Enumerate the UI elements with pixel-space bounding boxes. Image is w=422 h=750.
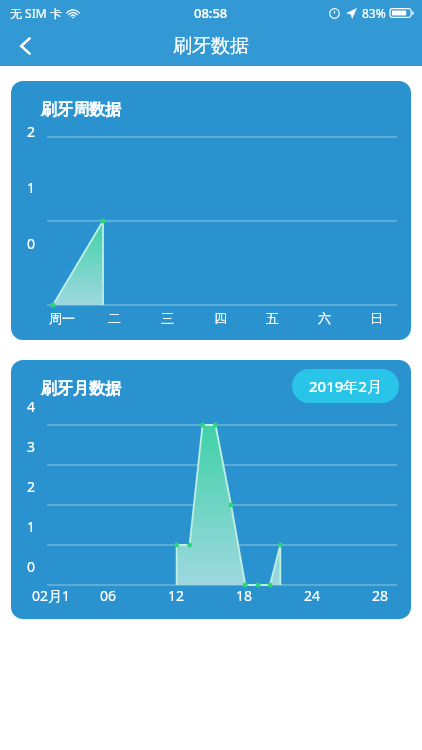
staticText: 18: [236, 586, 253, 605]
staticText: 06: [100, 586, 117, 605]
staticText: 三: [161, 310, 174, 326]
button[interactable]: 2019年2月: [292, 369, 399, 403]
staticText: 2: [27, 122, 36, 141]
staticText: 02月1: [32, 586, 71, 605]
staticText: 周一: [49, 310, 75, 326]
staticText: 12: [168, 586, 185, 605]
staticText: 0: [27, 234, 36, 253]
staticText: 4: [27, 397, 36, 416]
staticText: 24: [304, 586, 321, 605]
staticText: 六: [318, 310, 331, 326]
staticText: 2019年2月: [309, 376, 382, 396]
staticText: 2: [27, 477, 36, 496]
staticText: 28: [372, 586, 389, 605]
button[interactable]: 刷牙周数据: [11, 81, 411, 340]
staticText: 刷牙月数据: [41, 379, 121, 399]
button[interactable]: 刷牙月数据: [11, 360, 411, 619]
staticText: 0: [27, 557, 36, 576]
staticText: 3: [27, 437, 36, 456]
staticText: 1: [27, 178, 36, 197]
staticText: 四: [214, 310, 227, 326]
staticText: 无 SIM 卡: [10, 5, 62, 21]
staticText: 1: [27, 517, 36, 536]
staticText: 五: [266, 310, 279, 326]
staticText: 二: [108, 310, 121, 326]
staticText: 日: [370, 310, 383, 326]
staticText: 08:58: [194, 4, 228, 22]
staticText: 刷牙数据: [173, 34, 249, 58]
staticText: 刷牙周数据: [41, 100, 121, 120]
staticText: 83%: [362, 5, 386, 21]
button[interactable]: Back: [6, 26, 46, 66]
